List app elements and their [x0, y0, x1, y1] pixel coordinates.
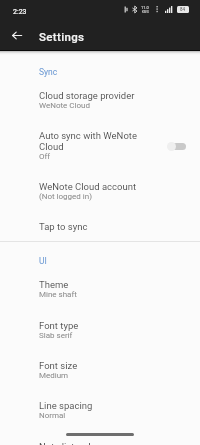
- staticText: Line spacing: [39, 400, 93, 411]
- staticText: KB/S: [142, 10, 149, 14]
- staticText: Medium: [39, 371, 69, 380]
- staticText: Tap to sync: [39, 221, 88, 232]
- button[interactable]: Back: [4, 22, 30, 48]
- button[interactable]: Auto sync toggle: [167, 138, 186, 154]
- button[interactable]: Tap to sync: [0, 214, 200, 240]
- staticText: Auto sync with WeNote Cloud: [39, 130, 151, 152]
- staticText: 84: [180, 7, 186, 12]
- staticText: WeNote Cloud: [39, 101, 90, 110]
- staticText: Note list order: [39, 441, 99, 445]
- staticText: Font type: [39, 320, 79, 331]
- staticText: UI: [39, 256, 47, 266]
- button[interactable]: Auto sync with WeNote Cloud: [0, 130, 200, 181]
- staticText: Mine shaft: [39, 290, 77, 299]
- staticText: 2:23: [13, 8, 27, 16]
- staticText: Normal: [39, 411, 66, 420]
- button[interactable]: Font type: [0, 320, 200, 360]
- button[interactable]: Font size: [0, 360, 200, 400]
- button[interactable]: WeNote Cloud account: [0, 181, 200, 221]
- button[interactable]: Cloud storage provider: [0, 90, 200, 130]
- button[interactable]: Note list order: [0, 434, 200, 445]
- staticText: Sync: [39, 67, 58, 77]
- staticText: Slab serif: [39, 331, 73, 340]
- staticText: Cloud storage provider: [39, 90, 135, 101]
- staticText: Settings: [39, 30, 85, 43]
- staticText: Off: [39, 152, 51, 161]
- button[interactable]: Line spacing: [0, 400, 200, 440]
- staticText: 11.0: [141, 5, 149, 10]
- staticText: (Not logged in): [39, 192, 92, 201]
- button[interactable]: Theme: [0, 279, 200, 319]
- staticText: Font size: [39, 360, 78, 371]
- staticText: WeNote Cloud account: [39, 181, 137, 192]
- staticText: Theme: [39, 279, 69, 290]
